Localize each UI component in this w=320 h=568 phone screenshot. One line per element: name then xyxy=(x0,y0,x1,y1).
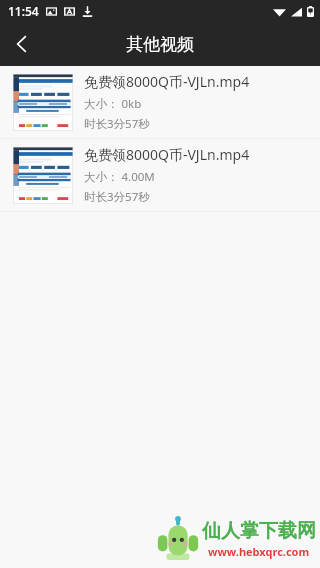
staticText: 11:54 xyxy=(8,3,39,19)
staticText: 免费领8000Q币-VJLn.mp4 xyxy=(84,145,250,164)
button[interactable]: 免费领8000Q币-VJLn.mp4 xyxy=(0,66,320,138)
staticText: 时长3分57秒 xyxy=(84,116,150,132)
staticText: 大小： 0kb xyxy=(84,96,142,112)
staticText: www.hebxqrc.com xyxy=(208,544,310,559)
button[interactable]: Back xyxy=(0,22,44,66)
staticText: 其他视频 xyxy=(126,34,194,55)
button[interactable]: 免费领8000Q币-VJLn.mp4 xyxy=(0,139,320,211)
staticText: 仙人掌下载网 xyxy=(202,519,316,543)
staticText: 免费领8000Q币-VJLn.mp4 xyxy=(84,72,250,91)
staticText: 大小： 4.00M xyxy=(84,169,155,185)
staticText: 时长3分57秒 xyxy=(84,189,150,205)
